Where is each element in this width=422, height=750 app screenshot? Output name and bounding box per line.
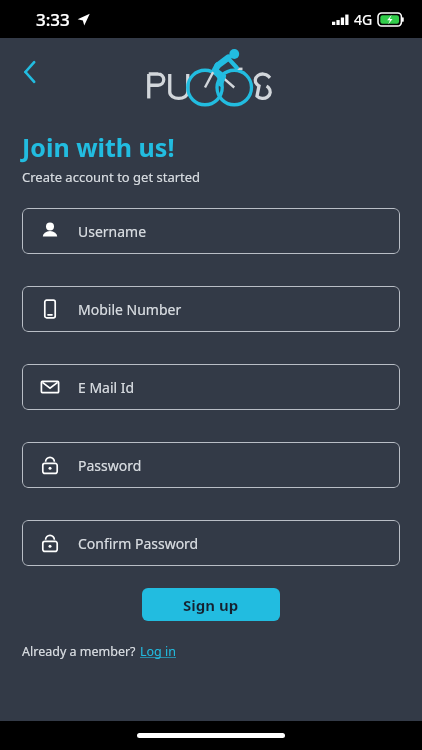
staticText: Create account to get started <box>22 168 201 186</box>
staticText: Confirm Password <box>78 534 199 553</box>
button[interactable]: Confirm Password <box>22 520 400 566</box>
button[interactable]: Username <box>22 208 400 254</box>
staticText: 4G <box>354 10 373 29</box>
button[interactable]: Log in <box>140 643 177 660</box>
button[interactable]: Sign up <box>142 588 280 621</box>
button[interactable]: Password <box>22 442 400 488</box>
staticText: E Mail Id <box>78 378 135 397</box>
button[interactable]: E Mail Id <box>22 364 400 410</box>
button[interactable]: Back <box>10 52 50 92</box>
staticText: Mobile Number <box>78 300 182 319</box>
staticText: Join with us! <box>22 130 175 164</box>
staticText: Already a member? <box>22 643 136 660</box>
staticText: Sign up <box>183 595 239 615</box>
button[interactable]: Mobile Number <box>22 286 400 332</box>
staticText: Password <box>78 456 142 475</box>
staticText: Username <box>78 222 147 241</box>
staticText: Log in <box>140 643 177 660</box>
staticText: 3:33 <box>36 8 70 31</box>
